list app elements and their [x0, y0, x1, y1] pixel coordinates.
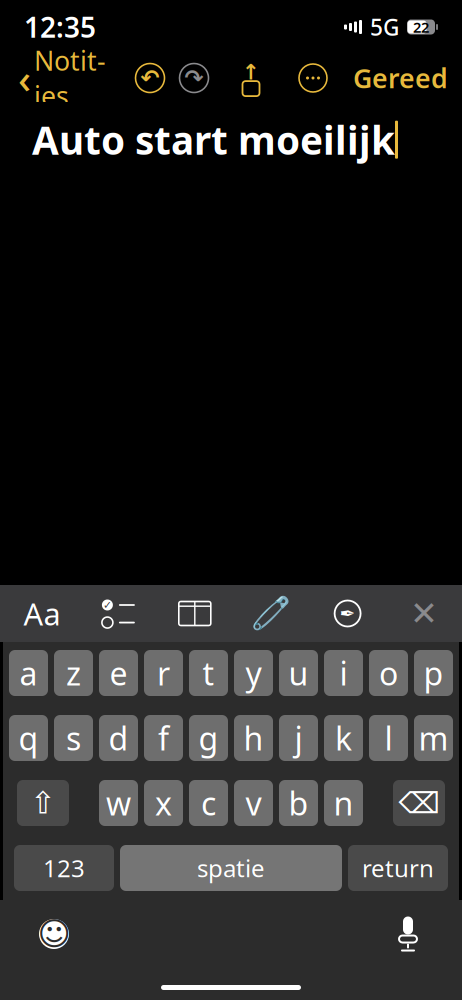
- staticText: o: [379, 652, 398, 694]
- staticText: j: [294, 717, 302, 759]
- staticText: ✒: [340, 603, 356, 624]
- staticText: ☺: [37, 916, 70, 952]
- button[interactable]: t: [189, 650, 228, 696]
- staticText: Auto start moeilijk: [32, 114, 395, 165]
- button[interactable]: h: [234, 715, 273, 761]
- staticText: g: [198, 717, 218, 759]
- button[interactable]: i: [324, 650, 363, 696]
- button[interactable]: w: [99, 780, 138, 826]
- staticText: Gereed: [353, 60, 448, 96]
- button[interactable]: Undo: [128, 56, 172, 100]
- staticText: d: [108, 717, 128, 759]
- staticText: p: [423, 652, 443, 694]
- staticText: e: [109, 652, 127, 694]
- button[interactable]: j: [279, 715, 318, 761]
- button[interactable]: a: [9, 650, 48, 696]
- staticText: f: [158, 717, 169, 759]
- staticText: r: [157, 652, 170, 694]
- button[interactable]: 123: [14, 845, 114, 891]
- staticText: 5G: [370, 12, 399, 42]
- staticText: ↷: [184, 65, 203, 91]
- staticText: ⌫: [398, 786, 439, 820]
- button[interactable]: x: [144, 780, 183, 826]
- staticText: return: [362, 852, 434, 884]
- button[interactable]: More: [291, 56, 335, 100]
- button[interactable]: Share: [229, 56, 273, 100]
- button[interactable]: Format: [20, 591, 64, 635]
- staticText: l: [384, 717, 392, 759]
- staticText: ✕: [410, 595, 438, 632]
- button[interactable]: Delete: [393, 780, 445, 826]
- staticText: 🧷: [251, 595, 291, 632]
- button[interactable]: Gereed: [349, 56, 452, 100]
- button[interactable]: k: [324, 715, 363, 761]
- staticText: m: [418, 717, 448, 759]
- staticText: k: [335, 717, 352, 759]
- staticText: Notities: [34, 43, 106, 113]
- button[interactable]: Shift: [17, 780, 69, 826]
- staticText: a: [19, 652, 37, 694]
- button[interactable]: ‹: [10, 56, 114, 100]
- button[interactable]: return: [348, 845, 448, 891]
- button[interactable]: y: [234, 650, 273, 696]
- staticText: spatie: [197, 852, 265, 884]
- staticText: w: [106, 782, 131, 824]
- staticText: u: [288, 652, 308, 694]
- button[interactable]: f: [144, 715, 183, 761]
- staticText: y: [245, 652, 261, 694]
- staticText: Aa: [23, 593, 60, 634]
- button[interactable]: n: [324, 780, 363, 826]
- staticText: i: [339, 652, 347, 694]
- button[interactable]: v: [234, 780, 273, 826]
- button[interactable]: e: [99, 650, 138, 696]
- staticText: ⇧: [30, 786, 56, 820]
- staticText: ↑: [242, 60, 260, 84]
- staticText: z: [66, 652, 81, 694]
- staticText: q: [18, 717, 38, 759]
- button[interactable]: r: [144, 650, 183, 696]
- button[interactable]: Markup: [326, 591, 370, 635]
- staticText: ‹: [18, 51, 31, 104]
- button[interactable]: spatie: [120, 845, 342, 891]
- button[interactable]: Dictation: [386, 912, 430, 956]
- button[interactable]: d: [99, 715, 138, 761]
- button[interactable]: b: [279, 780, 318, 826]
- staticText: 123: [43, 852, 85, 884]
- staticText: ✓: [103, 599, 112, 611]
- button[interactable]: q: [9, 715, 48, 761]
- button[interactable]: g: [189, 715, 228, 761]
- staticText: 12:35: [24, 8, 96, 46]
- staticText: x: [155, 782, 172, 824]
- staticText: h: [243, 717, 263, 759]
- staticText: t: [202, 652, 214, 694]
- button[interactable]: m: [414, 715, 453, 761]
- button[interactable]: l: [369, 715, 408, 761]
- staticText: b: [288, 782, 308, 824]
- button[interactable]: Attach: [249, 591, 293, 635]
- button[interactable]: s: [54, 715, 93, 761]
- button[interactable]: p: [414, 650, 453, 696]
- staticText: 22: [413, 17, 429, 37]
- staticText: ↶: [140, 65, 159, 91]
- button[interactable]: u: [279, 650, 318, 696]
- button[interactable]: z: [54, 650, 93, 696]
- staticText: v: [245, 782, 261, 824]
- staticText: c: [201, 782, 216, 824]
- button[interactable]: Emoji: [32, 912, 76, 956]
- button[interactable]: Table: [173, 591, 217, 635]
- staticText: s: [66, 717, 81, 759]
- button[interactable]: Redo: [172, 56, 216, 100]
- button[interactable]: Close keyboard: [402, 591, 446, 635]
- button[interactable]: o: [369, 650, 408, 696]
- button[interactable]: Checklist: [96, 591, 140, 635]
- button[interactable]: c: [189, 780, 228, 826]
- staticText: n: [333, 782, 353, 824]
